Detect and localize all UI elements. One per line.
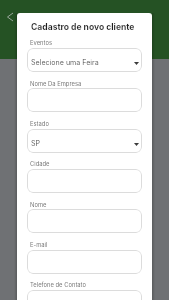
staticText: Eventos <box>30 39 52 46</box>
button[interactable]: Selecione uma Feira <box>27 48 142 72</box>
staticText: Selecione uma Feira <box>31 58 99 67</box>
button[interactable] <box>27 290 142 300</box>
button[interactable]: SP <box>27 129 142 153</box>
button[interactable] <box>27 169 142 193</box>
staticText: SP <box>31 139 41 148</box>
staticText: Cidade <box>30 160 50 167</box>
staticText: E-mail <box>30 241 48 248</box>
staticText: Nome <box>30 201 47 208</box>
staticText: Nome Da Empresa <box>30 80 82 87</box>
button[interactable] <box>27 88 142 112</box>
button[interactable] <box>27 250 142 274</box>
staticText: Telefone de Contato <box>30 281 86 288</box>
button[interactable]: Back <box>2 9 17 24</box>
staticText: Cadastro de novo cliente <box>31 22 135 32</box>
staticText: Estado <box>30 120 49 127</box>
button[interactable] <box>27 209 142 233</box>
